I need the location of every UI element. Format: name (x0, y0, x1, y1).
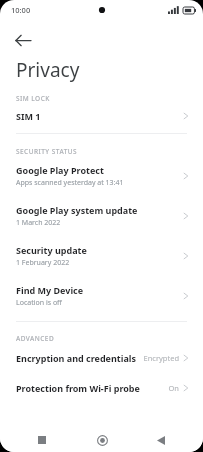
button[interactable]: Find My Device (0, 276, 203, 316)
staticText: Find My Device (16, 284, 84, 296)
button[interactable]: Back (9, 26, 37, 54)
button[interactable]: Back (144, 428, 178, 452)
button[interactable]: Google Play system update (0, 196, 203, 236)
staticText: Google Play Protect (16, 164, 104, 176)
staticText: ADVANCED (16, 334, 55, 343)
staticText: Privacy (16, 57, 80, 83)
staticText: Apps scanned yesterday at 13:41 (16, 178, 124, 188)
button[interactable]: Home (85, 428, 119, 452)
staticText: Location is off (16, 298, 62, 308)
staticText: 1 March 2022 (16, 218, 61, 228)
staticText: On (168, 383, 179, 393)
button[interactable]: Security update (0, 236, 203, 276)
staticText: SECURITY STATUS (16, 147, 78, 156)
button[interactable]: SIM 1 (0, 103, 203, 132)
staticText: Encryption and credentials (16, 352, 143, 364)
staticText: Protection from Wi-Fi probe (16, 382, 168, 394)
button[interactable]: Protection from Wi-Fi probe (0, 373, 203, 403)
staticText: SIM LOCK (16, 94, 50, 103)
staticText: 10:00 (11, 5, 31, 15)
staticText: Security update (16, 244, 87, 256)
staticText: Encrypted (143, 353, 179, 363)
staticText: SIM 1 (16, 110, 183, 122)
button[interactable]: Google Play Protect (0, 156, 203, 196)
staticText: Google Play system update (16, 204, 138, 216)
staticText: 1 February 2022 (16, 258, 70, 268)
button[interactable]: Recent apps (25, 428, 59, 452)
button[interactable]: Encryption and credentials (0, 343, 203, 373)
